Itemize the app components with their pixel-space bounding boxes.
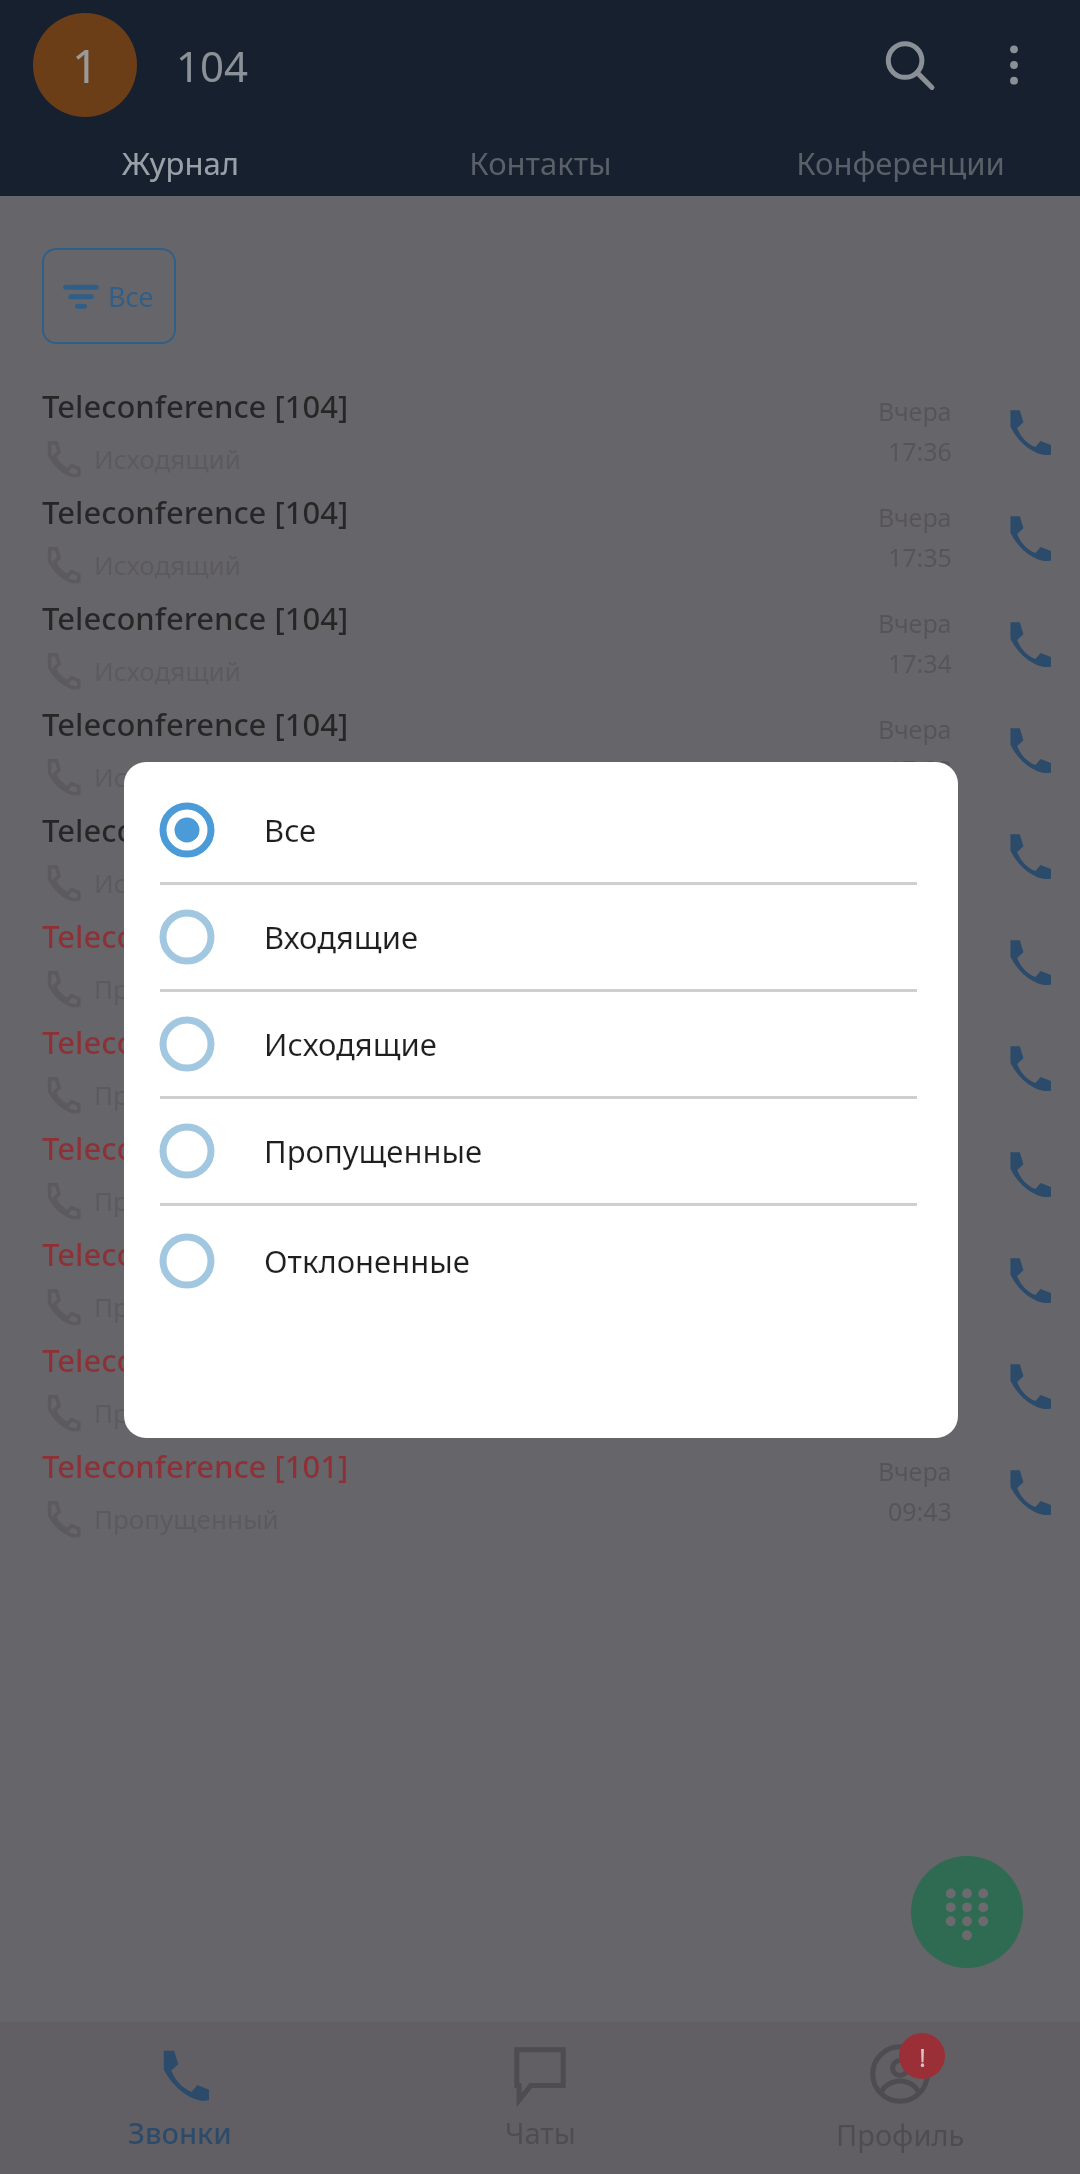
staticText: Исходящий bbox=[94, 759, 241, 794]
staticText: Исходящий bbox=[94, 441, 241, 476]
staticText: 09:56 bbox=[888, 964, 952, 998]
staticText: Входящие bbox=[264, 916, 419, 958]
button[interactable]: Teleconference [101] bbox=[0, 1014, 1080, 1120]
button[interactable]: Ещё bbox=[964, 15, 1064, 115]
button[interactable]: Исходящие bbox=[124, 992, 958, 1096]
button[interactable]: 1 bbox=[33, 13, 137, 117]
button[interactable]: Позвонить bbox=[988, 1348, 1062, 1422]
staticText: Вчера bbox=[878, 606, 952, 640]
button[interactable]: Teleconference [104] bbox=[0, 590, 1080, 696]
button[interactable]: Конференции bbox=[720, 130, 1080, 196]
button[interactable]: Teleconference [101] bbox=[0, 1332, 1080, 1438]
staticText: Исходящие bbox=[264, 1023, 437, 1065]
staticText: Все bbox=[264, 809, 317, 851]
staticText: Журнал bbox=[122, 142, 239, 184]
button[interactable]: ! bbox=[720, 2022, 1080, 2174]
button[interactable]: Teleconference [101] bbox=[0, 1438, 1080, 1544]
staticText: Teleconference [101] bbox=[42, 915, 349, 957]
staticText: Пропущенный bbox=[94, 1501, 279, 1536]
staticText: Teleconference [104] bbox=[42, 597, 349, 639]
staticText: Исходящий bbox=[94, 547, 241, 582]
staticText: Пропущенные bbox=[264, 1130, 483, 1172]
staticText: Отклоненные bbox=[264, 1240, 470, 1282]
staticText: 17:33 bbox=[888, 752, 952, 786]
staticText: Teleconference [104] bbox=[42, 703, 349, 745]
staticText: Teleconference [104] bbox=[42, 809, 349, 851]
button[interactable]: Teleconference [101] bbox=[0, 1226, 1080, 1332]
button[interactable]: Позвонить bbox=[988, 1242, 1062, 1316]
button[interactable]: Журнал bbox=[0, 130, 360, 196]
staticText: 10:02 bbox=[888, 858, 952, 892]
button[interactable]: Позвонить bbox=[988, 500, 1062, 574]
button[interactable]: Позвонить bbox=[988, 712, 1062, 786]
staticText: Вчера bbox=[878, 1454, 952, 1488]
button[interactable]: Клавиатура набора bbox=[911, 1856, 1023, 1968]
button[interactable]: Teleconference [104] bbox=[0, 378, 1080, 484]
button[interactable]: Контакты bbox=[360, 130, 720, 196]
staticText: 09:43 bbox=[888, 1494, 952, 1528]
staticText: Пропущенный bbox=[94, 1289, 279, 1324]
staticText: Исходящий bbox=[94, 865, 241, 900]
staticText: Пропущенный bbox=[94, 971, 279, 1006]
staticText: Пропущенный bbox=[94, 1395, 279, 1430]
staticText: 09:55 bbox=[888, 1070, 952, 1104]
staticText: Teleconference [101] bbox=[42, 1127, 349, 1169]
button[interactable]: Teleconference [101] bbox=[0, 908, 1080, 1014]
button[interactable]: Teleconference [101] bbox=[0, 1120, 1080, 1226]
button[interactable]: Позвонить bbox=[988, 818, 1062, 892]
staticText: 17:35 bbox=[888, 540, 952, 574]
staticText: 17:34 bbox=[888, 646, 952, 680]
button[interactable]: Teleconference [104] bbox=[0, 696, 1080, 802]
button[interactable]: Позвонить bbox=[988, 1454, 1062, 1528]
button[interactable]: Отклоненные bbox=[124, 1206, 958, 1316]
button[interactable]: Позвонить bbox=[988, 1030, 1062, 1104]
staticText: Teleconference [104] bbox=[42, 385, 349, 427]
button[interactable]: Teleconference [104] bbox=[0, 484, 1080, 590]
staticText: Пропущенный bbox=[94, 1077, 279, 1112]
staticText: Профиль bbox=[836, 2115, 965, 2154]
staticText: Teleconference [101] bbox=[42, 1339, 349, 1381]
staticText: Исходящий bbox=[94, 653, 241, 688]
button[interactable]: Все bbox=[42, 248, 176, 344]
staticText: 09:54 bbox=[888, 1176, 952, 1210]
staticText: Вчера bbox=[878, 394, 952, 428]
staticText: Все bbox=[108, 278, 154, 315]
staticText: 104 bbox=[176, 37, 249, 94]
staticText: ! bbox=[919, 2039, 926, 2074]
staticText: Чаты bbox=[505, 2113, 576, 2152]
staticText: Вчера bbox=[878, 712, 952, 746]
button[interactable]: Позвонить bbox=[988, 606, 1062, 680]
staticText: Контакты bbox=[469, 142, 612, 184]
staticText: Конференции bbox=[796, 142, 1005, 184]
staticText: Вчера bbox=[878, 500, 952, 534]
button[interactable]: Пропущенные bbox=[124, 1099, 958, 1203]
button[interactable]: Все bbox=[124, 778, 958, 882]
staticText: 1 bbox=[72, 34, 99, 97]
button[interactable]: Поиск bbox=[854, 10, 964, 120]
staticText: Teleconference [101] bbox=[42, 1021, 349, 1063]
staticText: Teleconference [101] bbox=[42, 1233, 349, 1275]
button[interactable]: Входящие bbox=[124, 885, 958, 989]
staticText: Teleconference [101] bbox=[42, 1445, 349, 1487]
staticText: Teleconference [104] bbox=[42, 491, 349, 533]
staticText: Пропущенный bbox=[94, 1183, 279, 1218]
button[interactable]: Позвонить bbox=[988, 394, 1062, 468]
button[interactable]: Позвонить bbox=[988, 924, 1062, 998]
button[interactable]: Звонки bbox=[0, 2022, 360, 2174]
staticText: 17:36 bbox=[888, 434, 952, 468]
staticText: Звонки bbox=[128, 2113, 232, 2152]
button[interactable]: Позвонить bbox=[988, 1136, 1062, 1210]
button[interactable]: Teleconference [104] bbox=[0, 802, 1080, 908]
